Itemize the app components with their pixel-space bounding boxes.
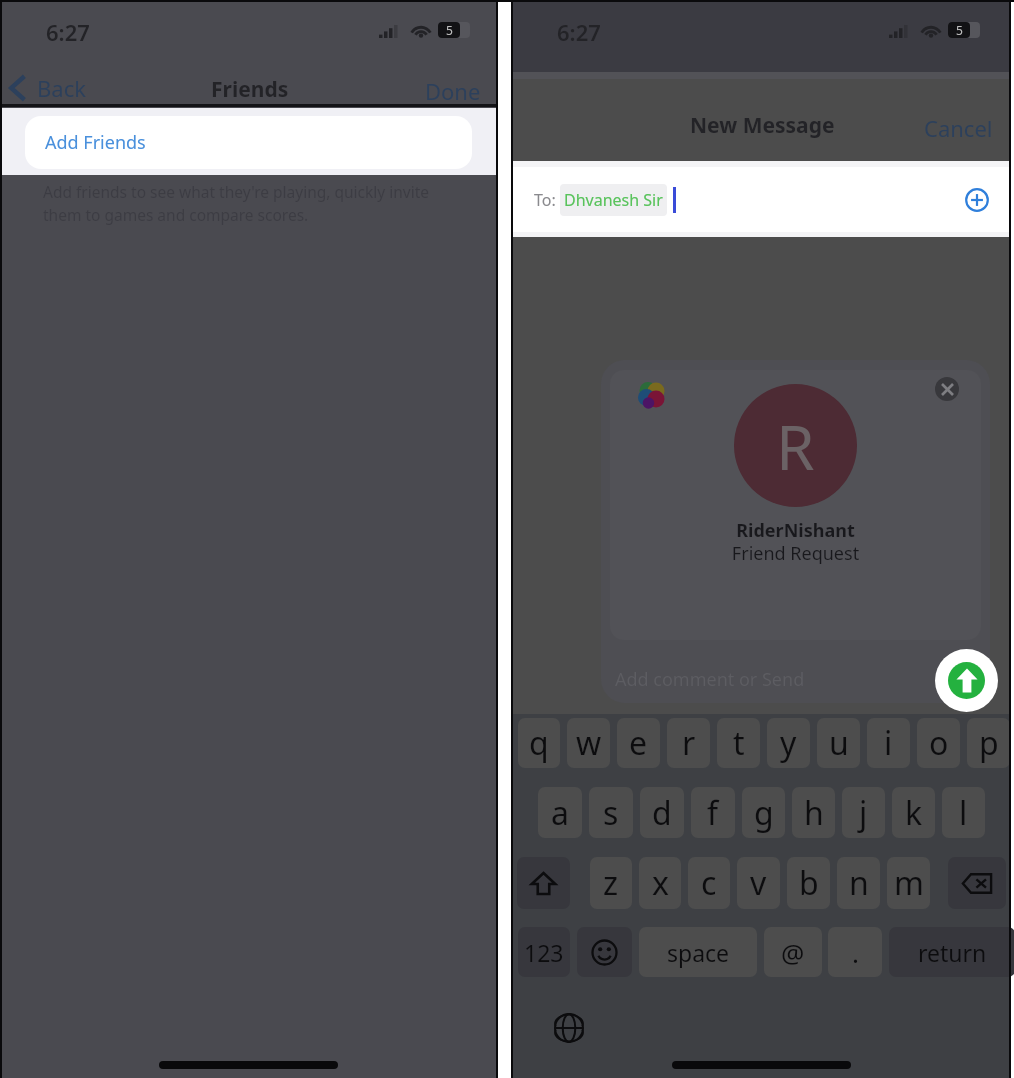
staticText: New Message	[690, 111, 835, 140]
button[interactable]: Cancel	[924, 113, 993, 143]
staticText: Friend Request	[601, 541, 990, 566]
staticText: R	[776, 404, 815, 488]
staticText: j	[859, 791, 868, 835]
button[interactable]: return	[889, 927, 1014, 977]
staticText: o	[929, 721, 949, 765]
staticText: Done	[425, 76, 481, 106]
staticText: f	[707, 791, 719, 835]
button[interactable]: w	[567, 718, 610, 768]
button[interactable]: Add contact	[965, 188, 989, 212]
button[interactable]: a	[538, 787, 582, 838]
button[interactable]: y	[767, 718, 810, 768]
staticText: @	[781, 935, 805, 970]
button[interactable]: m	[887, 857, 930, 909]
staticText: Back	[37, 73, 86, 103]
staticText: u	[829, 721, 849, 765]
button[interactable]: s	[589, 787, 633, 838]
staticText: 6:27	[46, 17, 90, 47]
button[interactable]: k	[892, 787, 935, 838]
staticText: v	[750, 861, 767, 905]
staticText: RiderNishant	[601, 518, 990, 543]
staticText: n	[849, 861, 869, 905]
staticText: m	[894, 861, 924, 905]
staticText: Dhvanesh Sir	[564, 189, 663, 211]
button[interactable]: Change keyboard	[551, 1010, 587, 1046]
staticText: Add friends to see what they're playing,…	[43, 181, 430, 226]
staticText: x	[652, 861, 669, 905]
button[interactable]: c	[688, 857, 730, 909]
button[interactable]: z	[590, 857, 632, 909]
button[interactable]: j	[842, 787, 885, 838]
button[interactable]: Send	[935, 649, 998, 712]
button[interactable]: r	[667, 718, 710, 768]
button[interactable]: b	[787, 857, 830, 909]
staticText: 5	[446, 22, 453, 38]
staticText: e	[629, 721, 648, 765]
button[interactable]: v	[737, 857, 780, 909]
button[interactable]: Close	[601, 360, 990, 703]
button[interactable]: d	[640, 787, 684, 838]
button[interactable]: @	[764, 927, 822, 977]
staticText: t	[733, 721, 745, 765]
button[interactable]: Back	[8, 72, 86, 104]
staticText: To:	[534, 189, 556, 211]
staticText: 5	[956, 22, 963, 38]
staticText: return	[918, 937, 987, 968]
button[interactable]: p	[967, 718, 1010, 768]
staticText: g	[754, 791, 774, 835]
staticText: y	[780, 721, 797, 765]
button[interactable]: 123	[518, 927, 570, 977]
button[interactable]: Backspace	[948, 857, 1006, 909]
button[interactable]: space	[639, 927, 757, 977]
staticText: h	[804, 791, 824, 835]
staticText: space	[667, 937, 730, 968]
button[interactable]: t	[717, 718, 760, 768]
staticText: z	[603, 861, 619, 905]
staticText: d	[652, 791, 672, 835]
button[interactable]: o	[917, 718, 960, 768]
staticText: 123	[524, 937, 564, 968]
button[interactable]: i	[867, 718, 910, 768]
staticText: l	[959, 791, 968, 835]
staticText: p	[979, 721, 999, 765]
staticText: Friends	[211, 75, 289, 104]
staticText: Cancel	[924, 113, 993, 143]
button[interactable]: Done	[425, 76, 481, 106]
staticText: q	[529, 721, 549, 765]
staticText: i	[884, 721, 893, 765]
button[interactable]: h	[792, 787, 835, 838]
button[interactable]: .	[828, 927, 882, 977]
button[interactable]: e	[617, 718, 660, 768]
button[interactable]: n	[837, 857, 880, 909]
button[interactable]: q	[518, 718, 560, 768]
staticText: s	[603, 791, 619, 835]
button[interactable]: g	[742, 787, 785, 838]
staticText: c	[701, 861, 717, 905]
staticText: k	[905, 791, 923, 835]
button[interactable]: Emoji	[577, 927, 632, 977]
button[interactable]: To:	[513, 167, 1010, 232]
staticText: .	[852, 935, 859, 970]
staticText: w	[576, 721, 602, 765]
staticText: 6:27	[557, 17, 601, 47]
button[interactable]: f	[691, 787, 735, 838]
staticText: Add comment or Send	[615, 667, 805, 692]
button[interactable]: x	[639, 857, 681, 909]
button[interactable]: Add Friends	[25, 116, 472, 169]
button[interactable]: Close	[935, 377, 959, 401]
staticText: Add Friends	[45, 130, 146, 155]
button[interactable]: u	[817, 718, 860, 768]
staticText: r	[682, 721, 696, 765]
staticText: a	[551, 791, 569, 835]
staticText: b	[799, 861, 819, 905]
button[interactable]: l	[942, 787, 985, 838]
button[interactable]: Shift	[517, 857, 570, 909]
